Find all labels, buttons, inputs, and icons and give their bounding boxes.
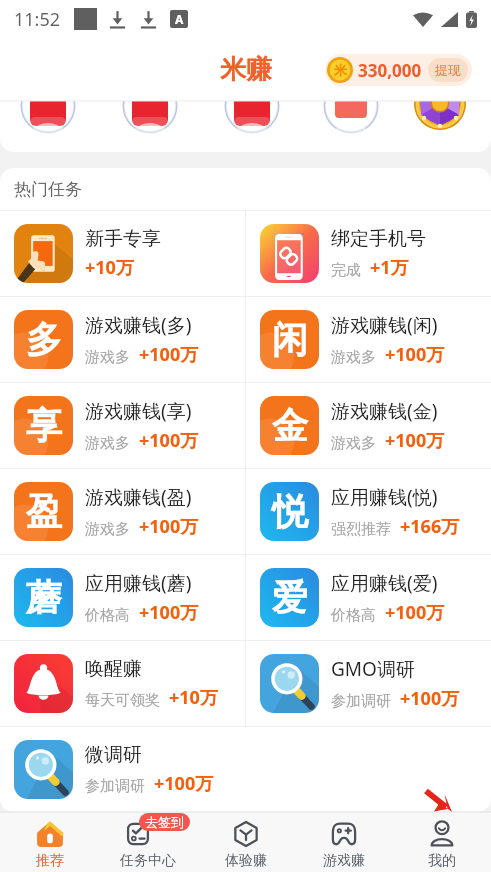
staticText: +100万 xyxy=(139,342,199,367)
button[interactable]: 蘑 xyxy=(0,555,245,640)
button[interactable]: 新手专享 xyxy=(0,211,245,296)
staticText: 任务中心 xyxy=(120,852,176,870)
button[interactable]: 唤醒赚 xyxy=(0,641,245,726)
staticText: +100万 xyxy=(139,514,199,539)
staticText: 游戏多 xyxy=(331,434,376,453)
button[interactable]: 游戏赚 xyxy=(295,812,393,872)
staticText: +10万 xyxy=(169,685,218,710)
staticText: +100万 xyxy=(385,428,445,453)
staticText: GMO调研 xyxy=(331,656,415,682)
staticText: 应用赚钱(悦) xyxy=(331,484,438,510)
button[interactable]: 闲 xyxy=(246,297,491,382)
button[interactable]: 去签到 xyxy=(99,812,197,872)
staticText: 强烈推荐 xyxy=(331,520,391,539)
staticText: 完成 xyxy=(331,261,361,280)
staticText: 我的 xyxy=(428,852,456,870)
staticText: +100万 xyxy=(139,600,199,625)
staticText: 去签到 xyxy=(145,814,184,830)
button[interactable]: 提现 xyxy=(428,58,468,82)
button[interactable]: 我的 xyxy=(393,812,491,872)
button[interactable]: 悦 xyxy=(246,469,491,554)
button[interactable]: 推荐 xyxy=(0,812,99,872)
staticText: 价格高 xyxy=(331,606,376,625)
staticText: 游戏赚钱(金) xyxy=(331,398,438,424)
staticText: 应用赚钱(爱) xyxy=(331,570,438,596)
staticText: 绑定手机号 xyxy=(331,227,426,251)
button[interactable]: 爱 xyxy=(246,555,491,640)
staticText: 游戏多 xyxy=(331,348,376,367)
staticText: 新手专享 xyxy=(85,227,161,251)
staticText: +100万 xyxy=(154,771,214,796)
button[interactable]: 金 xyxy=(246,383,491,468)
staticText: 享 xyxy=(26,403,62,448)
staticText: +1万 xyxy=(370,255,409,280)
staticText: 游戏赚钱(享) xyxy=(85,398,192,424)
staticText: 游戏赚钱(闲) xyxy=(331,312,438,338)
staticText: 多 xyxy=(26,317,62,362)
staticText: 提现 xyxy=(435,62,461,78)
button[interactable]: 微调研 xyxy=(0,727,245,812)
button[interactable]: 绑定手机号 xyxy=(246,211,491,296)
button[interactable]: 体验赚 xyxy=(197,812,295,872)
button[interactable]: 盈 xyxy=(0,469,245,554)
staticText: 米赚 xyxy=(220,53,272,86)
staticText: +10万 xyxy=(85,255,134,280)
staticText: 体验赚 xyxy=(225,852,267,870)
staticText: 米 xyxy=(334,62,347,78)
staticText: +166万 xyxy=(400,514,460,539)
staticText: 悦 xyxy=(272,489,308,534)
staticText: +100万 xyxy=(385,600,445,625)
button[interactable]: 多 xyxy=(0,297,245,382)
staticText: 热门任务 xyxy=(14,179,82,200)
staticText: +100万 xyxy=(385,342,445,367)
staticText: 游戏赚钱(多) xyxy=(85,312,192,338)
staticText: +100万 xyxy=(400,686,460,711)
staticText: 微调研 xyxy=(85,743,142,767)
staticText: 330,000 xyxy=(358,59,422,82)
staticText: 参加调研 xyxy=(85,777,145,796)
staticText: A xyxy=(175,11,184,27)
staticText: 每天可领奖 xyxy=(85,691,160,710)
staticText: 11:52 xyxy=(14,7,61,32)
button[interactable]: 享 xyxy=(0,383,245,468)
staticText: 游戏赚钱(盈) xyxy=(85,484,192,510)
staticText: 参加调研 xyxy=(331,692,391,711)
staticText: 游戏多 xyxy=(85,348,130,367)
button[interactable]: GMO调研 xyxy=(246,641,491,726)
staticText: 唤醒赚 xyxy=(85,657,142,681)
staticText: 价格高 xyxy=(85,606,130,625)
staticText: 金 xyxy=(272,403,308,448)
staticText: 游戏多 xyxy=(85,434,130,453)
button[interactable]: 米 xyxy=(325,54,472,86)
staticText: 游戏多 xyxy=(85,520,130,539)
staticText: 闲 xyxy=(272,317,308,362)
staticText: 爱 xyxy=(272,575,308,620)
staticText: 蘑 xyxy=(26,575,62,620)
staticText: 盈 xyxy=(26,489,62,534)
staticText: +100万 xyxy=(139,428,199,453)
staticText: 推荐 xyxy=(36,852,64,870)
staticText: 应用赚钱(蘑) xyxy=(85,570,192,596)
staticText: 游戏赚 xyxy=(323,852,365,870)
